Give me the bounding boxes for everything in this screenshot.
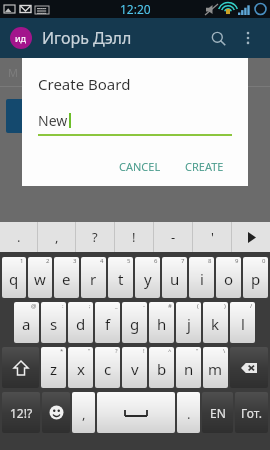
- button[interactable]: ^: [149, 347, 174, 388]
- button[interactable]: ?: [95, 347, 120, 388]
- button[interactable]: 0: [243, 257, 268, 298]
- button[interactable]: -: [154, 222, 192, 252]
- button[interactable]: 3: [54, 257, 79, 298]
- staticText: c: [104, 359, 112, 379]
- staticText: Create Board: [38, 74, 131, 94]
- staticText: b: [157, 359, 167, 379]
- staticText: New: [38, 111, 68, 130]
- staticText: ?: [115, 347, 118, 355]
- button[interactable]: 12!?: [2, 392, 40, 433]
- button[interactable]: ): [203, 302, 228, 343]
- staticText: (: [197, 302, 199, 310]
- staticText: 12:20: [120, 1, 151, 17]
- staticText: f: [105, 314, 111, 334]
- button[interactable]: !: [122, 347, 147, 388]
- staticText: CREATE: [185, 159, 224, 174]
- button[interactable]: CREATE: [177, 153, 232, 180]
- button[interactable]: 1: [2, 257, 26, 298]
- staticText: u: [170, 269, 180, 289]
- staticText: *: [60, 347, 64, 355]
- button[interactable]: (: [176, 302, 201, 343]
- staticText: 7: [181, 257, 185, 265]
- button[interactable]: \: [203, 347, 228, 388]
- staticText: a: [22, 314, 31, 334]
- button[interactable]: ?: [76, 222, 114, 252]
- staticText: 12!?: [10, 405, 33, 421]
- button[interactable]: CANCEL: [111, 153, 169, 180]
- button[interactable]: ;: [68, 302, 93, 343]
- staticText: z: [50, 359, 58, 379]
- staticText: 0: [262, 257, 266, 265]
- staticText: 6: [154, 257, 158, 265]
- button[interactable]: ': [193, 222, 231, 252]
- button[interactable]: 6: [135, 257, 160, 298]
- button[interactable]: More options: [236, 26, 260, 50]
- staticText: #: [168, 302, 172, 310]
- staticText: l: [241, 314, 245, 334]
- staticText: :: [62, 302, 64, 310]
- staticText: ?: [92, 228, 98, 246]
- staticText: s: [50, 314, 58, 334]
- staticText: 3: [73, 257, 77, 265]
- staticText: ': [211, 228, 214, 246]
- button[interactable]: *: [41, 347, 66, 388]
- button[interactable]: EN: [202, 392, 233, 433]
- button[interactable]: .: [177, 392, 200, 433]
- staticText: 2: [46, 257, 50, 265]
- staticText: \: [223, 347, 226, 355]
- button[interactable]: .: [0, 222, 37, 252]
- button[interactable]: Search: [204, 24, 232, 52]
- staticText: ": [196, 347, 199, 355]
- button[interactable]: -: [122, 302, 147, 343]
- button[interactable]: ,: [72, 392, 95, 433]
- staticText: 8: [208, 257, 212, 265]
- staticText: 1: [20, 257, 24, 265]
- button[interactable]: 7: [162, 257, 187, 298]
- staticText: w: [34, 269, 46, 289]
- button[interactable]: 5: [108, 257, 133, 298]
- button[interactable]: Space: [97, 392, 175, 433]
- button[interactable]: Backspace: [230, 347, 268, 388]
- staticText: EN: [210, 405, 226, 421]
- staticText: t: [118, 269, 124, 289]
- staticText: ,: [55, 228, 59, 246]
- staticText: Игорь Дэлл: [42, 27, 132, 49]
- button[interactable]: Shift: [2, 347, 39, 388]
- staticText: CANCEL: [119, 159, 161, 174]
- button[interactable]: Гот.: [235, 392, 268, 433]
- staticText: ;: [89, 302, 91, 310]
- button[interactable]: More suggestions: [232, 222, 270, 252]
- button[interactable]: 8: [189, 257, 214, 298]
- button[interactable]: @: [14, 302, 39, 343]
- staticText: Гот.: [241, 405, 262, 421]
- button[interactable]: :: [41, 302, 66, 343]
- staticText: p: [251, 269, 261, 289]
- button[interactable]: /: [230, 302, 255, 343]
- staticText: g: [130, 314, 140, 334]
- button[interactable]: #: [149, 302, 174, 343]
- staticText: .: [17, 228, 21, 246]
- button[interactable]: !: [115, 222, 153, 252]
- button[interactable]: ": [176, 347, 201, 388]
- staticText: 9: [235, 257, 239, 265]
- staticText: h: [157, 314, 167, 334]
- staticText: 4: [100, 257, 104, 265]
- staticText: 5: [127, 257, 131, 265]
- staticText: ^: [168, 347, 172, 355]
- staticText: @: [31, 302, 37, 310]
- staticText: M: [8, 65, 18, 80]
- button[interactable]: Emoji: [42, 392, 70, 433]
- button[interactable]: 9: [216, 257, 241, 298]
- staticText: y: [144, 269, 152, 289]
- button[interactable]: 2: [28, 257, 52, 298]
- button[interactable]: 4: [81, 257, 106, 298]
- button[interactable]: ид: [10, 27, 32, 49]
- staticText: ,: [82, 405, 86, 423]
- staticText: q: [9, 269, 19, 289]
- button[interactable]: _: [95, 302, 120, 343]
- staticText: j: [187, 314, 191, 334]
- button[interactable]: ,: [38, 222, 75, 252]
- button[interactable]: ": [68, 347, 93, 388]
- staticText: ): [224, 302, 226, 310]
- staticText: .: [187, 405, 191, 423]
